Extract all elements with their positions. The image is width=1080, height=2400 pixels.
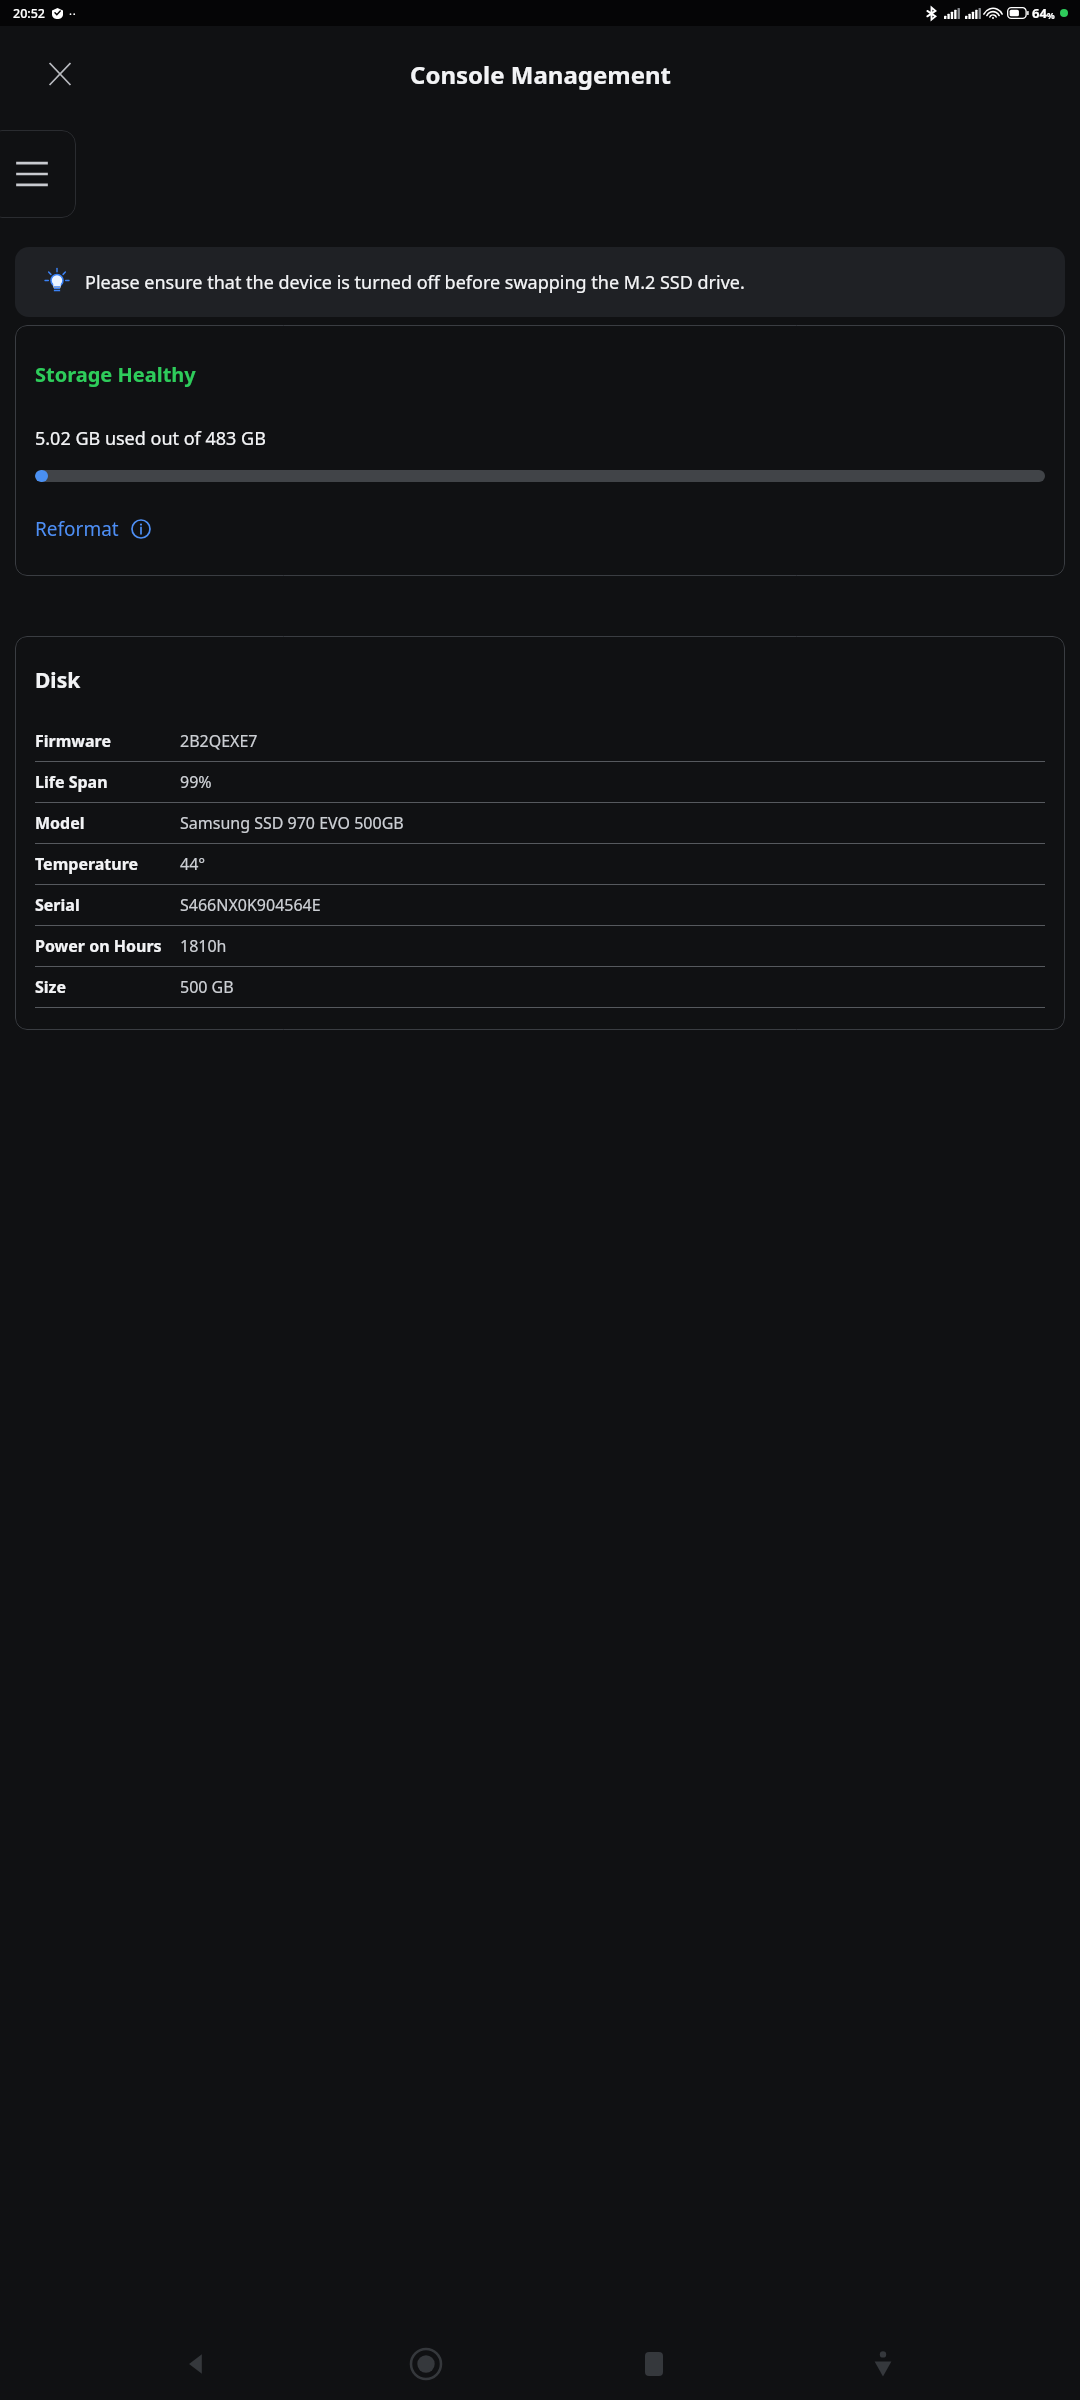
button[interactable]: Reformat [35, 512, 151, 546]
staticText: 99% [180, 771, 212, 793]
staticText: Samsung SSD 970 EVO 500GB [180, 812, 404, 834]
staticText: Power on Hours [35, 935, 162, 957]
staticText: Temperature [35, 853, 139, 875]
staticText: Reformat [35, 516, 119, 542]
button[interactable]: Back [165, 2332, 229, 2396]
staticText: 44° [180, 853, 206, 875]
staticText: Firmware [35, 730, 111, 752]
button[interactable]: Recents [622, 2332, 686, 2396]
staticText: 5.02 GB used out of 483 GB [35, 426, 266, 451]
button[interactable]: Model [35, 803, 1045, 843]
button[interactable]: Firmware [35, 721, 1045, 761]
button[interactable]: Menu [0, 130, 76, 218]
button[interactable]: Please ensure that the device is turned … [15, 247, 1065, 317]
staticText: 1810h [180, 935, 227, 957]
staticText: Life Span [35, 771, 108, 793]
staticText: % [1047, 10, 1055, 22]
staticText: Disk [35, 666, 81, 695]
staticText: 500 GB [180, 976, 234, 998]
staticText: Please ensure that the device is turned … [85, 270, 745, 295]
button[interactable]: Serial [35, 885, 1045, 925]
staticText: Size [35, 976, 67, 998]
staticText: 64 [1032, 4, 1047, 22]
staticText: Storage Healthy [35, 361, 196, 388]
button[interactable]: Close [36, 50, 84, 98]
staticText: Console Management [410, 58, 671, 91]
button[interactable]: Size [35, 967, 1045, 1007]
staticText: 20:52 [13, 5, 46, 22]
button[interactable]: Life Span [35, 762, 1045, 802]
staticText: Model [35, 812, 85, 834]
staticText: 2B2QEXE7 [180, 730, 258, 752]
staticText: Serial [35, 894, 80, 916]
button[interactable]: Hide keyboard [851, 2332, 915, 2396]
button[interactable]: Power on Hours [35, 926, 1045, 966]
button[interactable]: Home [394, 2332, 458, 2396]
button[interactable]: Temperature [35, 844, 1045, 884]
staticText: S466NX0K904564E [180, 894, 321, 916]
